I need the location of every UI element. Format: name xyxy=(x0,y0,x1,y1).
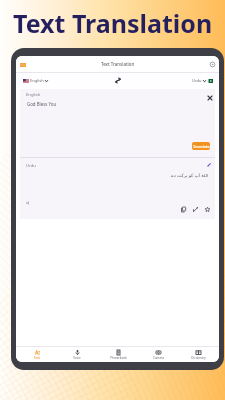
staticText: Phrasebook xyxy=(110,356,127,360)
button[interactable]: Clear text xyxy=(205,93,214,102)
button[interactable]: Text xyxy=(18,349,56,361)
button[interactable]: Dictionary xyxy=(179,349,217,361)
button[interactable]: Share xyxy=(191,205,200,214)
staticText: Urdu xyxy=(192,78,202,83)
staticText: Translate xyxy=(193,144,210,149)
staticText: English xyxy=(26,92,41,98)
button[interactable]: Camera xyxy=(139,349,177,361)
staticText: Dictionary xyxy=(191,356,206,360)
button[interactable]: Swap languages xyxy=(112,75,123,86)
staticText: English xyxy=(30,78,44,83)
button[interactable]: Menu xyxy=(18,60,27,69)
staticText: God Bless You xyxy=(27,101,57,107)
staticText: Urdu xyxy=(26,163,36,169)
button[interactable]: Phrasebook xyxy=(99,349,137,361)
button[interactable]: Add to favourites xyxy=(203,205,212,214)
staticText: اللہ آپ کو برکت دے xyxy=(171,172,209,178)
staticText: Voice xyxy=(73,356,81,360)
button[interactable]: Urdu xyxy=(191,76,214,85)
button[interactable]: Settings xyxy=(208,60,217,69)
staticText: Text Translation xyxy=(101,61,135,67)
button[interactable]: Translate xyxy=(192,142,210,150)
button[interactable]: Voice xyxy=(58,349,96,361)
staticText: Text Translation xyxy=(13,6,213,40)
button[interactable]: Copy xyxy=(179,205,188,214)
button[interactable]: Edit translation xyxy=(206,162,211,167)
staticText: Camera xyxy=(153,356,164,360)
staticText: Text xyxy=(34,356,40,360)
button[interactable]: English xyxy=(22,76,49,85)
